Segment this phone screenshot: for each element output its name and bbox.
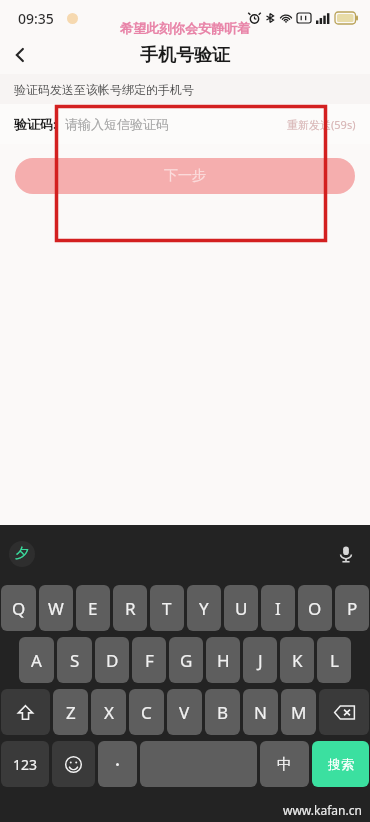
button[interactable]: Z (53, 689, 88, 735)
button[interactable]: Backspace (319, 689, 369, 735)
button[interactable]: Y (187, 585, 221, 631)
button[interactable]: Numbers (1, 741, 49, 787)
staticText: B (217, 701, 229, 724)
staticText: Y (199, 597, 209, 620)
staticText: Q (12, 597, 26, 620)
button[interactable]: G (169, 637, 203, 683)
button[interactable]: K (280, 637, 314, 683)
staticText: K (292, 649, 303, 672)
button[interactable]: C (129, 689, 164, 735)
button[interactable]: P (335, 585, 369, 631)
button[interactable]: 下一步 (15, 158, 355, 194)
button[interactable]: S (57, 637, 92, 683)
staticText: N (254, 701, 267, 724)
staticText: T (162, 597, 172, 620)
staticText: W (48, 597, 64, 620)
button[interactable]: M (281, 689, 316, 735)
button[interactable]: Language (260, 741, 309, 787)
button[interactable]: Input method (9, 541, 35, 567)
button[interactable]: F (132, 637, 166, 683)
button[interactable]: W (39, 585, 73, 631)
staticText: R (125, 597, 136, 620)
staticText: J (258, 649, 263, 672)
button[interactable]: Emoji (52, 741, 95, 787)
button[interactable]: R (113, 585, 147, 631)
staticText: L (330, 649, 339, 672)
staticText: F (145, 649, 154, 672)
staticText: X (104, 701, 114, 724)
staticText: I (275, 597, 281, 620)
button[interactable]: Voice input (333, 541, 359, 567)
button[interactable]: 重新发送(59s) (287, 117, 356, 132)
staticText: 验证码发送至该帐号绑定的手机号 (14, 82, 194, 97)
staticText: 下一步 (164, 167, 206, 185)
staticText: 123 (13, 755, 38, 774)
button[interactable]: 搜索 (312, 741, 369, 787)
button[interactable]: J (243, 637, 277, 683)
button[interactable]: I (261, 585, 295, 631)
staticText: H (217, 649, 230, 672)
staticText: U (235, 597, 248, 620)
staticText: O (308, 597, 322, 620)
staticText: S (70, 649, 80, 672)
staticText: C (141, 701, 152, 724)
staticText: 希望此刻你会安静听着 (120, 20, 250, 36)
button[interactable]: 验证码: (14, 104, 356, 144)
staticText: G (180, 649, 193, 672)
button[interactable]: N (243, 689, 278, 735)
staticText: 请输入短信验证码 (65, 116, 169, 132)
button[interactable]: Shift (1, 689, 50, 735)
button[interactable]: A (19, 637, 54, 683)
staticText: 中 (277, 755, 292, 774)
button[interactable]: O (298, 585, 332, 631)
staticText: www.kafan.cn (283, 802, 362, 818)
staticText: 验证码: (14, 115, 57, 133)
staticText: D (106, 649, 119, 672)
staticText: V (179, 701, 190, 724)
button[interactable]: Back (0, 36, 40, 74)
staticText: 重新发送(59s) (287, 117, 356, 132)
button[interactable]: Space (140, 741, 257, 787)
button[interactable]: X (91, 689, 126, 735)
button[interactable]: E (76, 585, 110, 631)
staticText: A (31, 649, 42, 672)
button[interactable]: V (167, 689, 202, 735)
staticText: 搜索 (328, 756, 354, 772)
staticText: E (88, 597, 98, 620)
button[interactable]: L (317, 637, 351, 683)
button[interactable]: Q (1, 585, 36, 631)
staticText: 手机号验证 (140, 44, 230, 67)
button[interactable]: H (206, 637, 240, 683)
staticText: P (347, 597, 358, 620)
button[interactable]: B (205, 689, 240, 735)
button[interactable]: T (150, 585, 184, 631)
staticText: 夕 (15, 545, 29, 563)
button[interactable]: U (224, 585, 258, 631)
staticText: 09:35 (18, 9, 54, 28)
staticText: M (291, 701, 307, 724)
button[interactable]: Period (98, 741, 137, 787)
button[interactable]: D (95, 637, 129, 683)
staticText: Z (66, 701, 76, 724)
